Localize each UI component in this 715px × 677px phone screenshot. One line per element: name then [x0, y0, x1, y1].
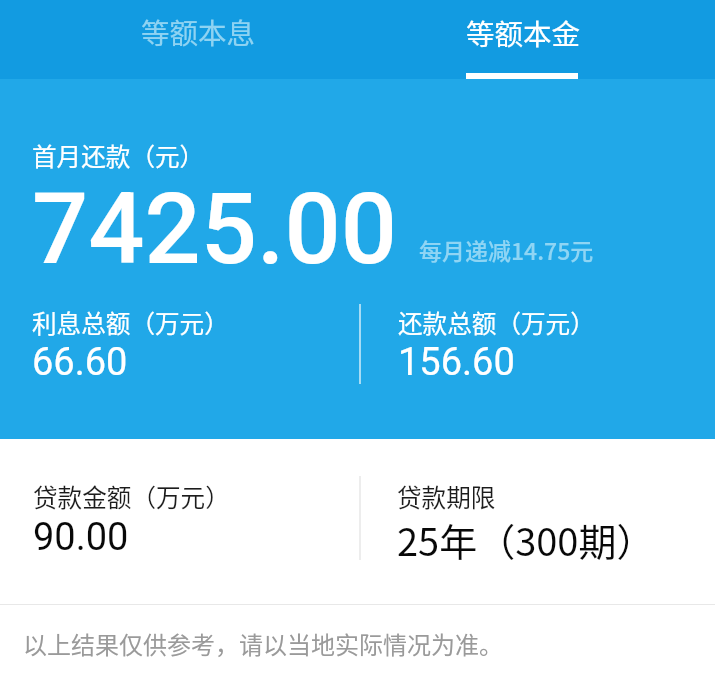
staticText: 首月还款（元）	[32, 137, 205, 173]
staticText: 利息总额（万元）	[32, 304, 229, 340]
staticText: 66.60	[32, 340, 128, 385]
button[interactable]: 等额本息	[0, 0, 357, 79]
staticText: 等额本金	[466, 12, 581, 53]
staticText: 7425.00	[32, 171, 398, 287]
staticText: 贷款期限	[397, 478, 496, 514]
staticText: 以上结果仅供参考，请以当地实际情况为准。	[23, 626, 503, 661]
staticText: 还款总额（万元）	[398, 304, 595, 340]
staticText: 每月递减14.75元	[419, 233, 594, 266]
button[interactable]: 贷款金额（万元）	[0, 439, 715, 604]
staticText: 90.00	[33, 515, 129, 560]
staticText: 156.60	[398, 340, 515, 385]
button[interactable]: 等额本金	[357, 0, 715, 79]
button[interactable]: 首月还款（元）	[0, 79, 715, 439]
staticText: 等额本息	[141, 11, 256, 52]
staticText: 25年（300期）	[397, 512, 655, 567]
staticText: 贷款金额（万元）	[33, 478, 230, 514]
